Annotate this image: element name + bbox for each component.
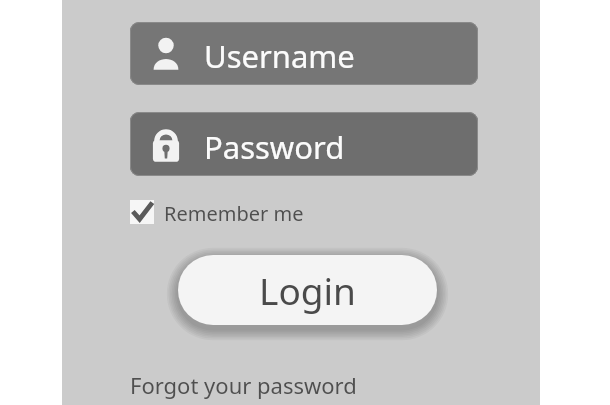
staticText: Forgot your password ? [130,370,360,400]
button[interactable]: Remember me [130,198,310,228]
staticText: Password [204,126,345,168]
button[interactable]: Password [130,112,478,176]
button[interactable]: Forgot your password ? [130,370,360,400]
staticText: Username [204,35,355,77]
staticText: Remember me [164,200,304,227]
button[interactable]: Login [178,255,437,325]
button[interactable]: Username [130,22,478,85]
staticText: Login [259,265,356,315]
